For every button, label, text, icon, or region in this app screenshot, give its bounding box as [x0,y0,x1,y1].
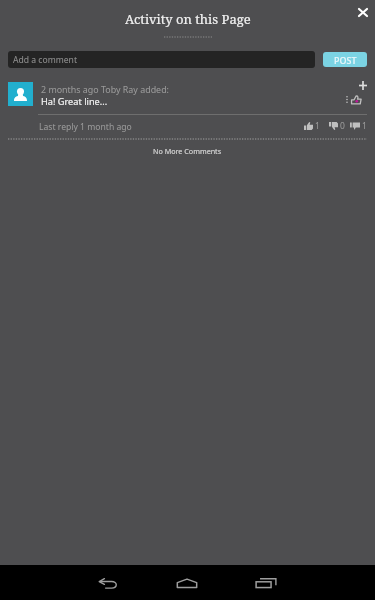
button[interactable]: Recent apps [244,572,288,594]
staticText: 1 [362,120,367,131]
staticText: 0 [340,120,345,131]
staticText: Add a comment [13,54,78,66]
button[interactable]: More options [341,93,352,106]
button[interactable]: Back [86,572,130,594]
staticText: Activity on this Page [125,10,251,28]
staticText: POST [334,54,357,66]
button[interactable]: 1 [304,120,320,131]
button[interactable]: Home [165,572,209,594]
staticText: 1 [315,120,320,131]
button[interactable]: No More Comments [153,146,222,156]
button[interactable]: Like [349,93,363,106]
staticText: Ha! Great line... [41,95,108,108]
button[interactable]: Close [352,1,374,23]
button[interactable]: 0 [329,120,345,131]
button[interactable]: Add comment [353,77,373,93]
button[interactable]: Add a comment [8,51,315,68]
button[interactable]: 1 [350,120,367,131]
staticText: 2 months ago Toby Ray added: [41,83,169,95]
staticText: Last reply 1 month ago [39,121,132,133]
button[interactable]: POST [323,52,367,67]
button[interactable]: Ha! Great line... [41,95,108,108]
button[interactable]: Last reply 1 month ago [39,121,132,133]
